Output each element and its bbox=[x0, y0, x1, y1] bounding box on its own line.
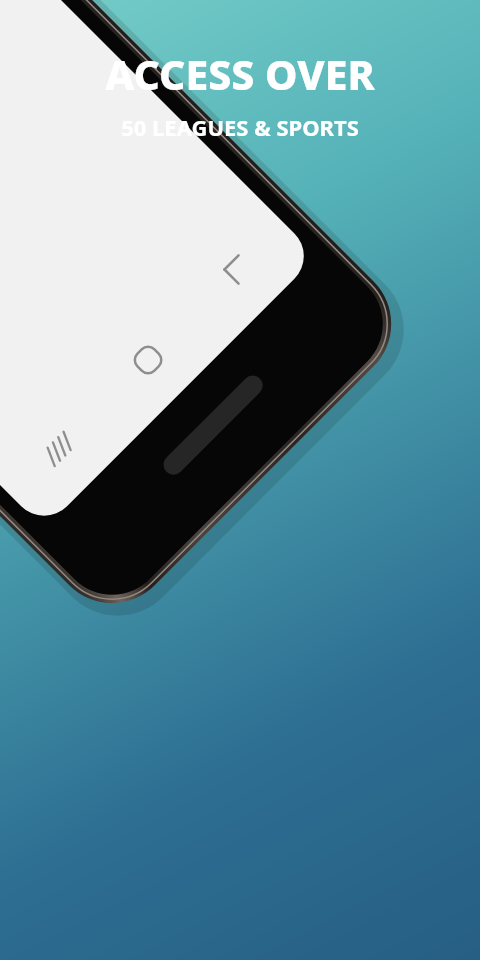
staticText: ACCESS OVER bbox=[105, 46, 375, 102]
staticText: 50 LEAGUES & SPORTS bbox=[121, 112, 359, 142]
button[interactable]: Phone preview showing Basketball leagues bbox=[72, 490, 480, 960]
button[interactable]: ACCESS OVER bbox=[16, 46, 464, 142]
